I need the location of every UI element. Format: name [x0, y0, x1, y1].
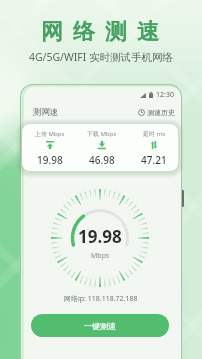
staticText: Mbps	[91, 251, 110, 261]
staticText: 下载 Mbps	[87, 130, 117, 138]
staticText: 测网速	[33, 107, 59, 118]
staticText: 19.98	[37, 153, 63, 167]
staticText: 一键测速	[84, 321, 116, 331]
staticText: 12:30	[156, 90, 174, 100]
staticText: 网络测速	[4, 18, 202, 46]
button[interactable]: 一键测速	[31, 314, 169, 337]
staticText: 测速历史	[147, 108, 175, 117]
staticText: 上传 Mbps	[35, 130, 65, 138]
staticText: 46.98	[89, 153, 115, 167]
staticText: 19.98	[78, 225, 122, 248]
button[interactable]: 测网速	[33, 107, 59, 118]
staticText: 47.21	[141, 153, 167, 167]
staticText: 延时 ms	[143, 130, 166, 138]
button[interactable]: 测速历史	[138, 108, 175, 117]
staticText: 4G/5G/WIFI 实时测试手机网络	[0, 50, 202, 64]
staticText: 网络ip: 118.118.72.188	[64, 294, 138, 304]
